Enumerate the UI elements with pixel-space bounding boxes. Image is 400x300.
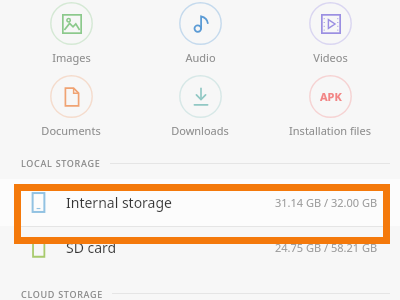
- button[interactable]: Audio: [141, 2, 259, 65]
- staticText: 31.14 GB / 32.00 GB: [275, 195, 378, 210]
- staticText: Videos: [313, 50, 348, 65]
- staticText: Audio: [185, 50, 216, 65]
- staticText: APK: [320, 89, 342, 104]
- staticText: Documents: [41, 123, 101, 138]
- staticText: SD card: [66, 238, 117, 257]
- staticText: Images: [52, 50, 91, 65]
- button[interactable]: Internal storage: [0, 179, 400, 226]
- button[interactable]: Downloads: [141, 75, 259, 138]
- button[interactable]: Documents: [12, 75, 130, 138]
- button[interactable]: SD card: [0, 227, 400, 267]
- staticText: 24.75 GB / 58.21 GB: [275, 240, 378, 255]
- staticText: Installation files: [289, 123, 371, 138]
- staticText: Internal storage: [66, 193, 172, 212]
- button[interactable]: Videos: [271, 2, 389, 65]
- button[interactable]: Images: [12, 2, 130, 65]
- staticText: LOCAL STORAGE: [21, 157, 101, 169]
- staticText: CLOUD STORAGE: [21, 288, 103, 300]
- staticText: Downloads: [171, 123, 229, 138]
- button[interactable]: Installation files: [271, 75, 389, 138]
